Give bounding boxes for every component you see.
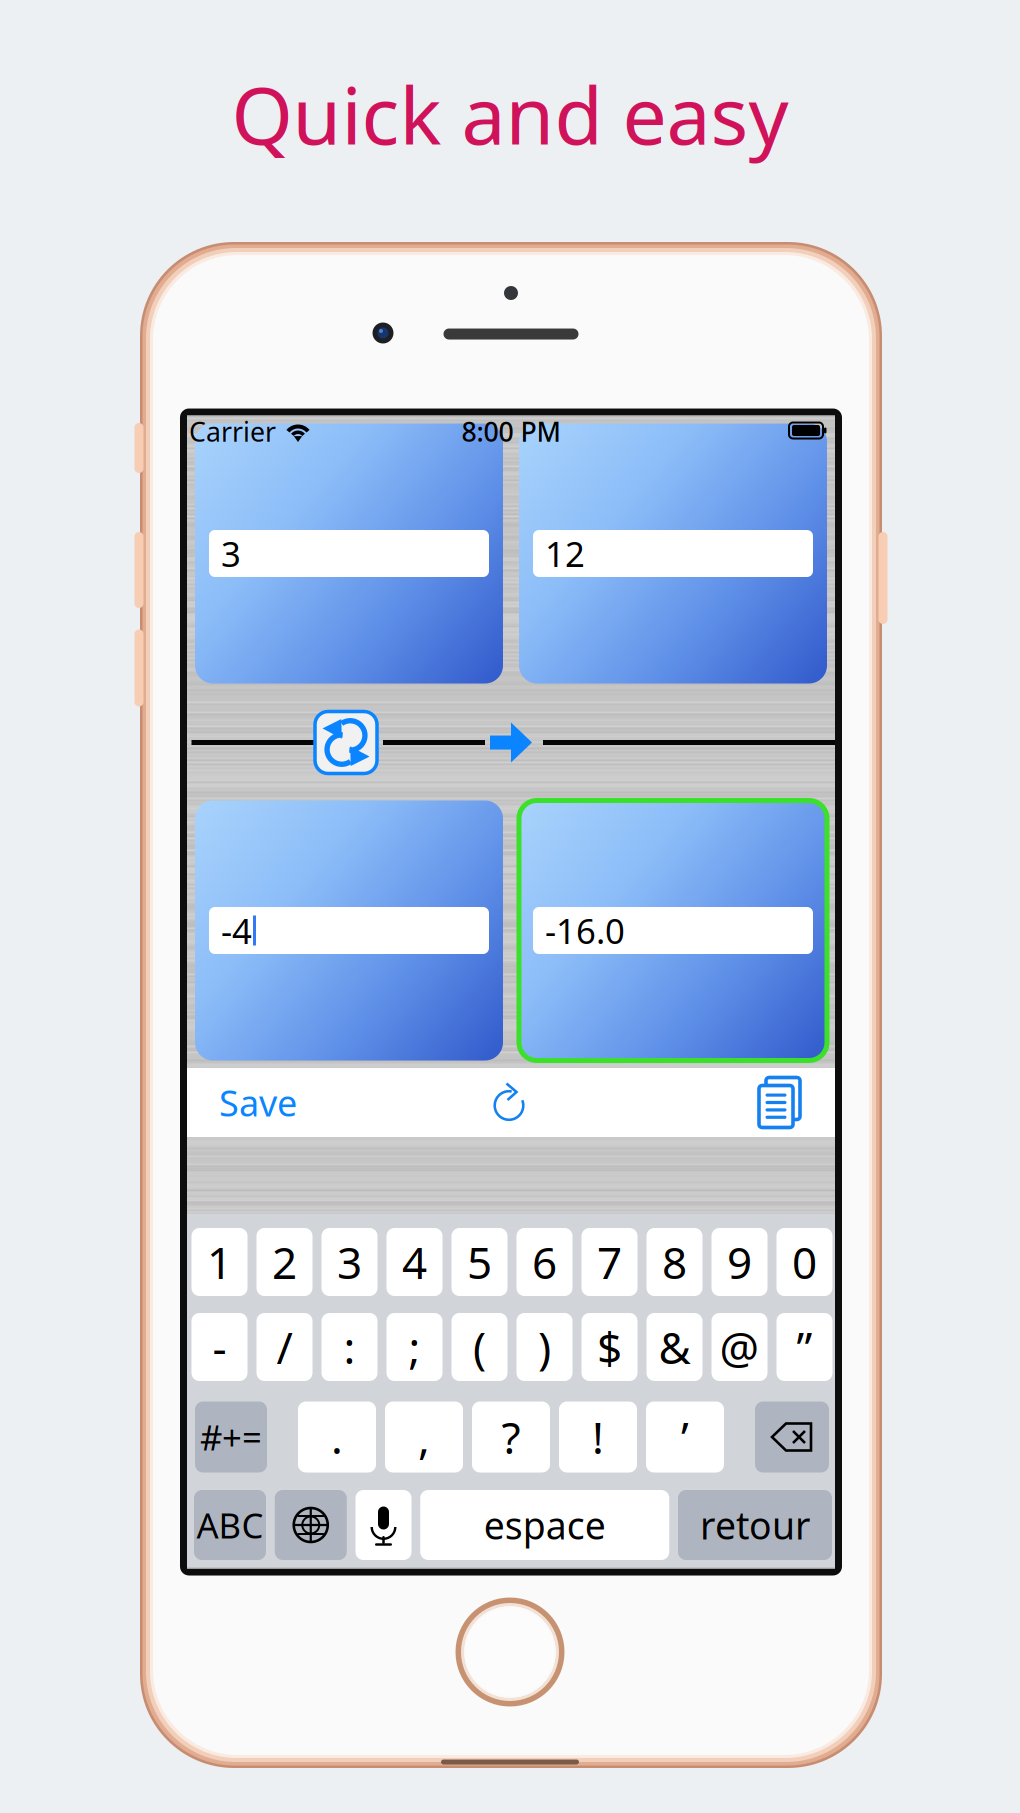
staticText: @ <box>719 1318 759 1376</box>
button[interactable]: Swap units <box>315 711 377 773</box>
button[interactable]: #+= <box>195 1401 267 1472</box>
button[interactable]: ABC <box>194 1490 266 1560</box>
button[interactable]: / <box>256 1313 312 1381</box>
staticText: #+= <box>200 1414 262 1460</box>
button[interactable]: & <box>646 1313 702 1381</box>
button[interactable]: ! <box>559 1401 637 1472</box>
staticText: Carrier <box>189 414 276 449</box>
staticText: / <box>276 1318 292 1376</box>
staticText: ( <box>473 1318 486 1376</box>
staticText: ! <box>592 1408 604 1466</box>
button[interactable]: ? <box>472 1401 550 1472</box>
staticText: ? <box>501 1408 520 1466</box>
staticText: 0 <box>792 1233 817 1291</box>
button[interactable]: 7 <box>581 1228 637 1296</box>
button[interactable]: Dictate <box>355 1490 411 1560</box>
staticText: 6 <box>532 1233 557 1291</box>
staticText: 5 <box>467 1233 492 1291</box>
button[interactable]: ( <box>451 1313 507 1381</box>
staticText: 2 <box>272 1233 297 1291</box>
staticText: 8:00 PM <box>461 414 560 449</box>
button[interactable]: ) <box>516 1313 572 1381</box>
button[interactable]: - <box>191 1313 247 1381</box>
button[interactable]: Recalculate <box>480 1068 542 1137</box>
button[interactable]: 9 <box>711 1228 767 1296</box>
button[interactable]: espace <box>420 1490 669 1560</box>
staticText: 4 <box>402 1233 427 1291</box>
button[interactable]: : <box>321 1313 377 1381</box>
staticText: ) <box>538 1318 551 1376</box>
staticText: 1 <box>207 1233 232 1291</box>
button[interactable]: Switch keyboard <box>275 1490 347 1560</box>
staticText: 9 <box>727 1233 752 1291</box>
button[interactable]: 3 <box>321 1228 377 1296</box>
button[interactable]: 5 <box>451 1228 507 1296</box>
button[interactable]: Copy <box>751 1068 809 1137</box>
button[interactable]: $ <box>581 1313 637 1381</box>
button[interactable]: @ <box>711 1313 767 1381</box>
button[interactable]: . <box>298 1401 376 1472</box>
button[interactable]: 1 <box>191 1228 247 1296</box>
staticText: ABC <box>196 1502 263 1548</box>
button[interactable]: Delete <box>755 1401 829 1472</box>
staticText: - <box>212 1318 226 1376</box>
staticText: , <box>418 1408 430 1466</box>
staticText: -16.0 <box>545 907 625 953</box>
staticText: Save <box>219 1079 297 1126</box>
button[interactable]: Save <box>187 1068 327 1137</box>
staticText: 3 <box>337 1233 362 1291</box>
staticText: . <box>331 1408 343 1466</box>
button[interactable]: ’ <box>646 1401 724 1472</box>
button[interactable]: 8 <box>646 1228 702 1296</box>
button[interactable]: , <box>385 1401 463 1472</box>
staticText: ; <box>408 1318 420 1376</box>
staticText: : <box>343 1318 355 1376</box>
button[interactable]: 6 <box>516 1228 572 1296</box>
staticText: retour <box>700 1500 810 1550</box>
button[interactable]: ” <box>776 1313 832 1381</box>
staticText: Quick and easy <box>231 62 788 166</box>
staticText: 3 <box>221 530 241 576</box>
staticText: 8 <box>662 1233 687 1291</box>
staticText: espace <box>484 1500 606 1550</box>
button[interactable]: ; <box>386 1313 442 1381</box>
staticText: -4 <box>221 907 252 953</box>
button[interactable]: 4 <box>386 1228 442 1296</box>
staticText: $ <box>597 1318 622 1376</box>
staticText: ” <box>796 1318 812 1376</box>
button[interactable]: 2 <box>256 1228 312 1296</box>
staticText: 12 <box>545 530 585 576</box>
staticText: 7 <box>597 1233 622 1291</box>
button[interactable]: retour <box>678 1490 832 1560</box>
staticText: ’ <box>681 1408 689 1466</box>
staticText: & <box>658 1318 690 1376</box>
button[interactable]: 0 <box>776 1228 832 1296</box>
